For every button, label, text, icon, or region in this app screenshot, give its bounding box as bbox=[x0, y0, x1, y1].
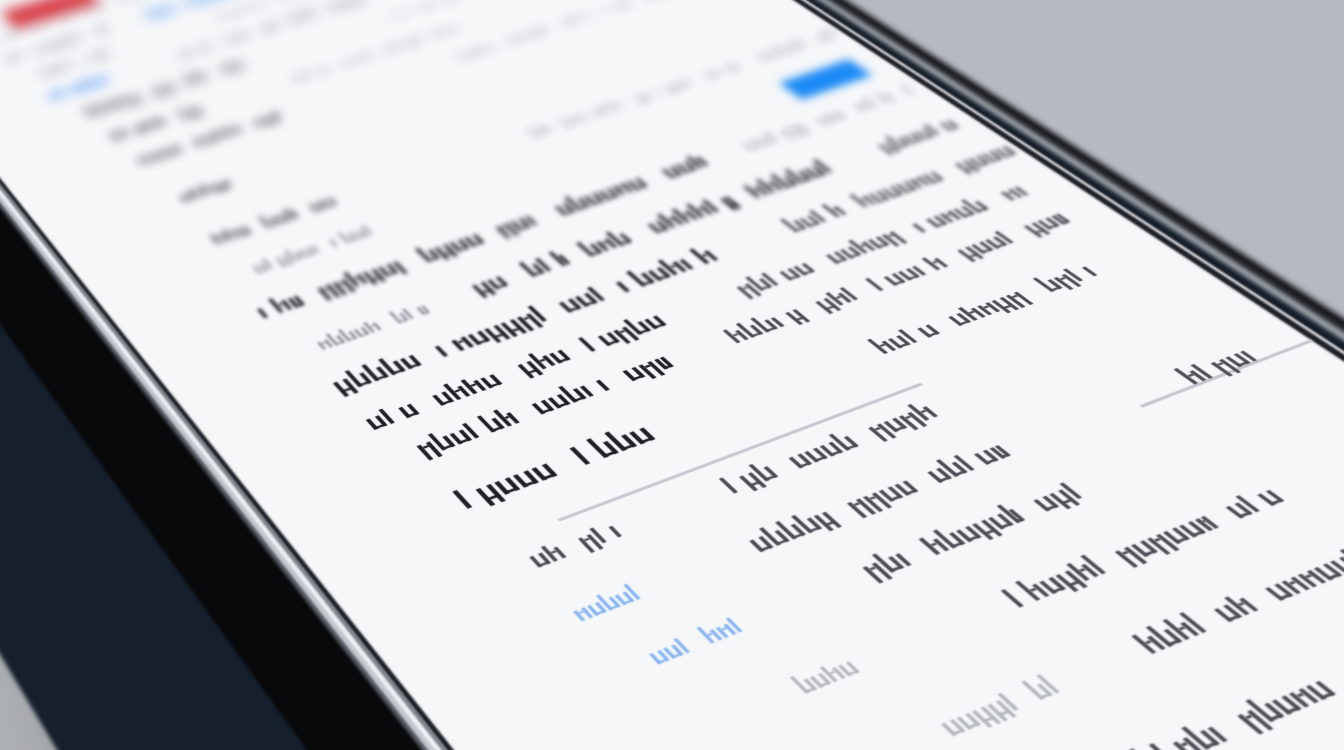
button[interactable]: Phone displaying a document bbox=[0, 0, 1344, 750]
